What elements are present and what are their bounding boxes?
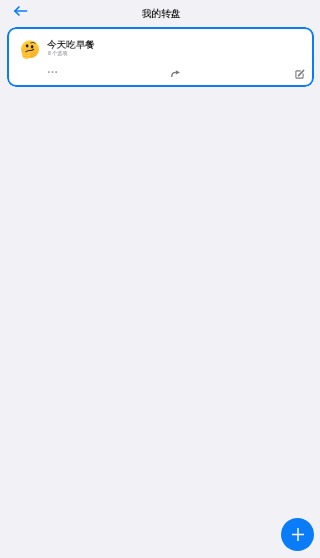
button[interactable]: Back <box>8 0 32 23</box>
staticText: 8 个选项 <box>48 50 68 57</box>
staticText: 我的转盘 <box>142 8 181 20</box>
staticText: 今天吃早餐 <box>47 39 95 51</box>
button[interactable]: Share <box>110 61 212 83</box>
button[interactable]: More options <box>7 61 110 83</box>
button[interactable]: Edit <box>212 61 314 83</box>
button[interactable]: Add <box>281 518 314 551</box>
button[interactable]: 今天吃早餐 <box>7 27 314 87</box>
